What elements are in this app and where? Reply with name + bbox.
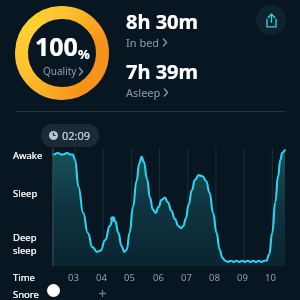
staticText: In bed xyxy=(126,35,160,50)
staticText: Snore xyxy=(13,288,39,300)
staticText: 07 xyxy=(181,271,192,284)
staticText: % xyxy=(78,45,90,63)
staticText: 09 xyxy=(237,271,248,284)
staticText: 06 xyxy=(153,271,164,284)
button[interactable]: 100 xyxy=(14,5,110,101)
staticText: 03 xyxy=(68,271,79,284)
staticText: 04 xyxy=(96,271,107,284)
button[interactable]: 8h 30m xyxy=(126,8,199,50)
button[interactable]: Snore event xyxy=(47,284,60,297)
staticText: Time xyxy=(13,271,35,284)
button[interactable]: 7h 39m xyxy=(126,58,199,100)
staticText: 7h 39m xyxy=(126,58,199,85)
staticText: sleep xyxy=(13,244,37,257)
staticText: 05 xyxy=(124,271,135,284)
staticText: Awake xyxy=(13,149,43,162)
button[interactable]: Share xyxy=(256,5,286,35)
button[interactable]: 02:09 xyxy=(41,124,99,147)
staticText: Quality xyxy=(43,64,77,78)
staticText: Asleep xyxy=(126,85,161,100)
staticText: 100 xyxy=(35,29,78,63)
staticText: Sleep xyxy=(13,187,38,200)
staticText: 08 xyxy=(209,271,220,284)
staticText: 10 xyxy=(265,271,276,284)
staticText: 8h 30m xyxy=(126,8,199,35)
staticText: 02:09 xyxy=(62,128,91,143)
staticText: Deep xyxy=(13,231,37,244)
